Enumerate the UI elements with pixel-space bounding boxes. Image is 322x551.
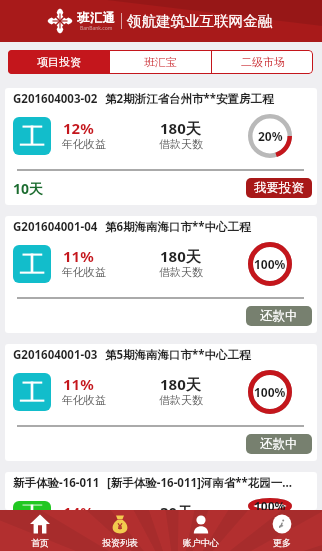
staticText: 10天 <box>13 179 44 198</box>
staticText: 11% <box>63 246 94 266</box>
button[interactable]: 新手体验-16-011 <box>5 472 317 510</box>
button[interactable]: 项目投资 <box>8 50 109 74</box>
staticText: 20% <box>258 128 283 144</box>
staticText: BanBank.com <box>80 25 113 32</box>
button[interactable]: 首页 <box>0 510 80 551</box>
button[interactable]: 账户中心 <box>160 510 241 551</box>
staticText: 180天 <box>160 118 201 138</box>
staticText: 年化收益 <box>62 265 106 279</box>
staticText: 100% <box>254 384 286 400</box>
staticText: 借款天数 <box>159 265 203 279</box>
staticText: 新手体验-16-011 <box>13 475 100 491</box>
button[interactable]: G201604001-03 <box>5 344 317 461</box>
staticText: 12% <box>63 118 94 138</box>
staticText: 更多 <box>273 537 291 548</box>
staticText: 100% <box>254 256 286 272</box>
staticText: 年化收益 <box>62 393 106 407</box>
staticText: [新手体验-16-011]河南省**花园一... <box>107 475 293 491</box>
staticText: 项目投资 <box>37 55 81 69</box>
staticText: G201604001-04 <box>13 219 98 235</box>
staticText: 投资列表 <box>102 537 138 548</box>
staticText: 100% <box>254 498 286 510</box>
button[interactable]: 投资列表 <box>80 510 160 551</box>
staticText: 第5期海南海口市**中心工程 <box>105 347 251 363</box>
staticText: 180天 <box>160 246 201 266</box>
button[interactable]: 班汇宝 <box>110 50 211 74</box>
button[interactable]: 还款中 <box>246 434 312 454</box>
staticText: G201604001-03 <box>13 347 98 363</box>
staticText: 我要投资 <box>254 180 304 196</box>
staticText: 11% <box>63 374 94 394</box>
staticText: 14% <box>63 502 94 510</box>
staticText: 首页 <box>31 537 49 548</box>
staticText: 30天 <box>160 502 193 510</box>
staticText: 还款中 <box>260 308 298 324</box>
staticText: 年化收益 <box>62 137 106 151</box>
staticText: 班汇宝 <box>144 55 177 69</box>
staticText: 借款天数 <box>159 393 203 407</box>
staticText: 180天 <box>160 374 201 394</box>
staticText: 班汇通 <box>77 10 116 25</box>
button[interactable]: G201604003-02 <box>5 88 317 205</box>
button[interactable]: G201604001-04 <box>5 216 317 333</box>
staticText: 领航建筑业互联网金融 <box>127 12 272 30</box>
button[interactable]: 二级市场 <box>212 50 313 74</box>
button[interactable]: 还款中 <box>246 306 312 326</box>
staticText: 第6期海南海口市**中心工程 <box>105 219 251 235</box>
staticText: G201604003-02 <box>13 91 98 107</box>
staticText: 借款天数 <box>159 137 203 151</box>
staticText: 还款中 <box>260 436 298 452</box>
staticText: 账户中心 <box>183 537 219 548</box>
staticText: 第2期浙江省台州市**安置房工程 <box>105 91 274 107</box>
staticText: 二级市场 <box>241 55 285 69</box>
button[interactable]: 更多 <box>241 510 322 551</box>
button[interactable]: 我要投资 <box>246 178 312 198</box>
